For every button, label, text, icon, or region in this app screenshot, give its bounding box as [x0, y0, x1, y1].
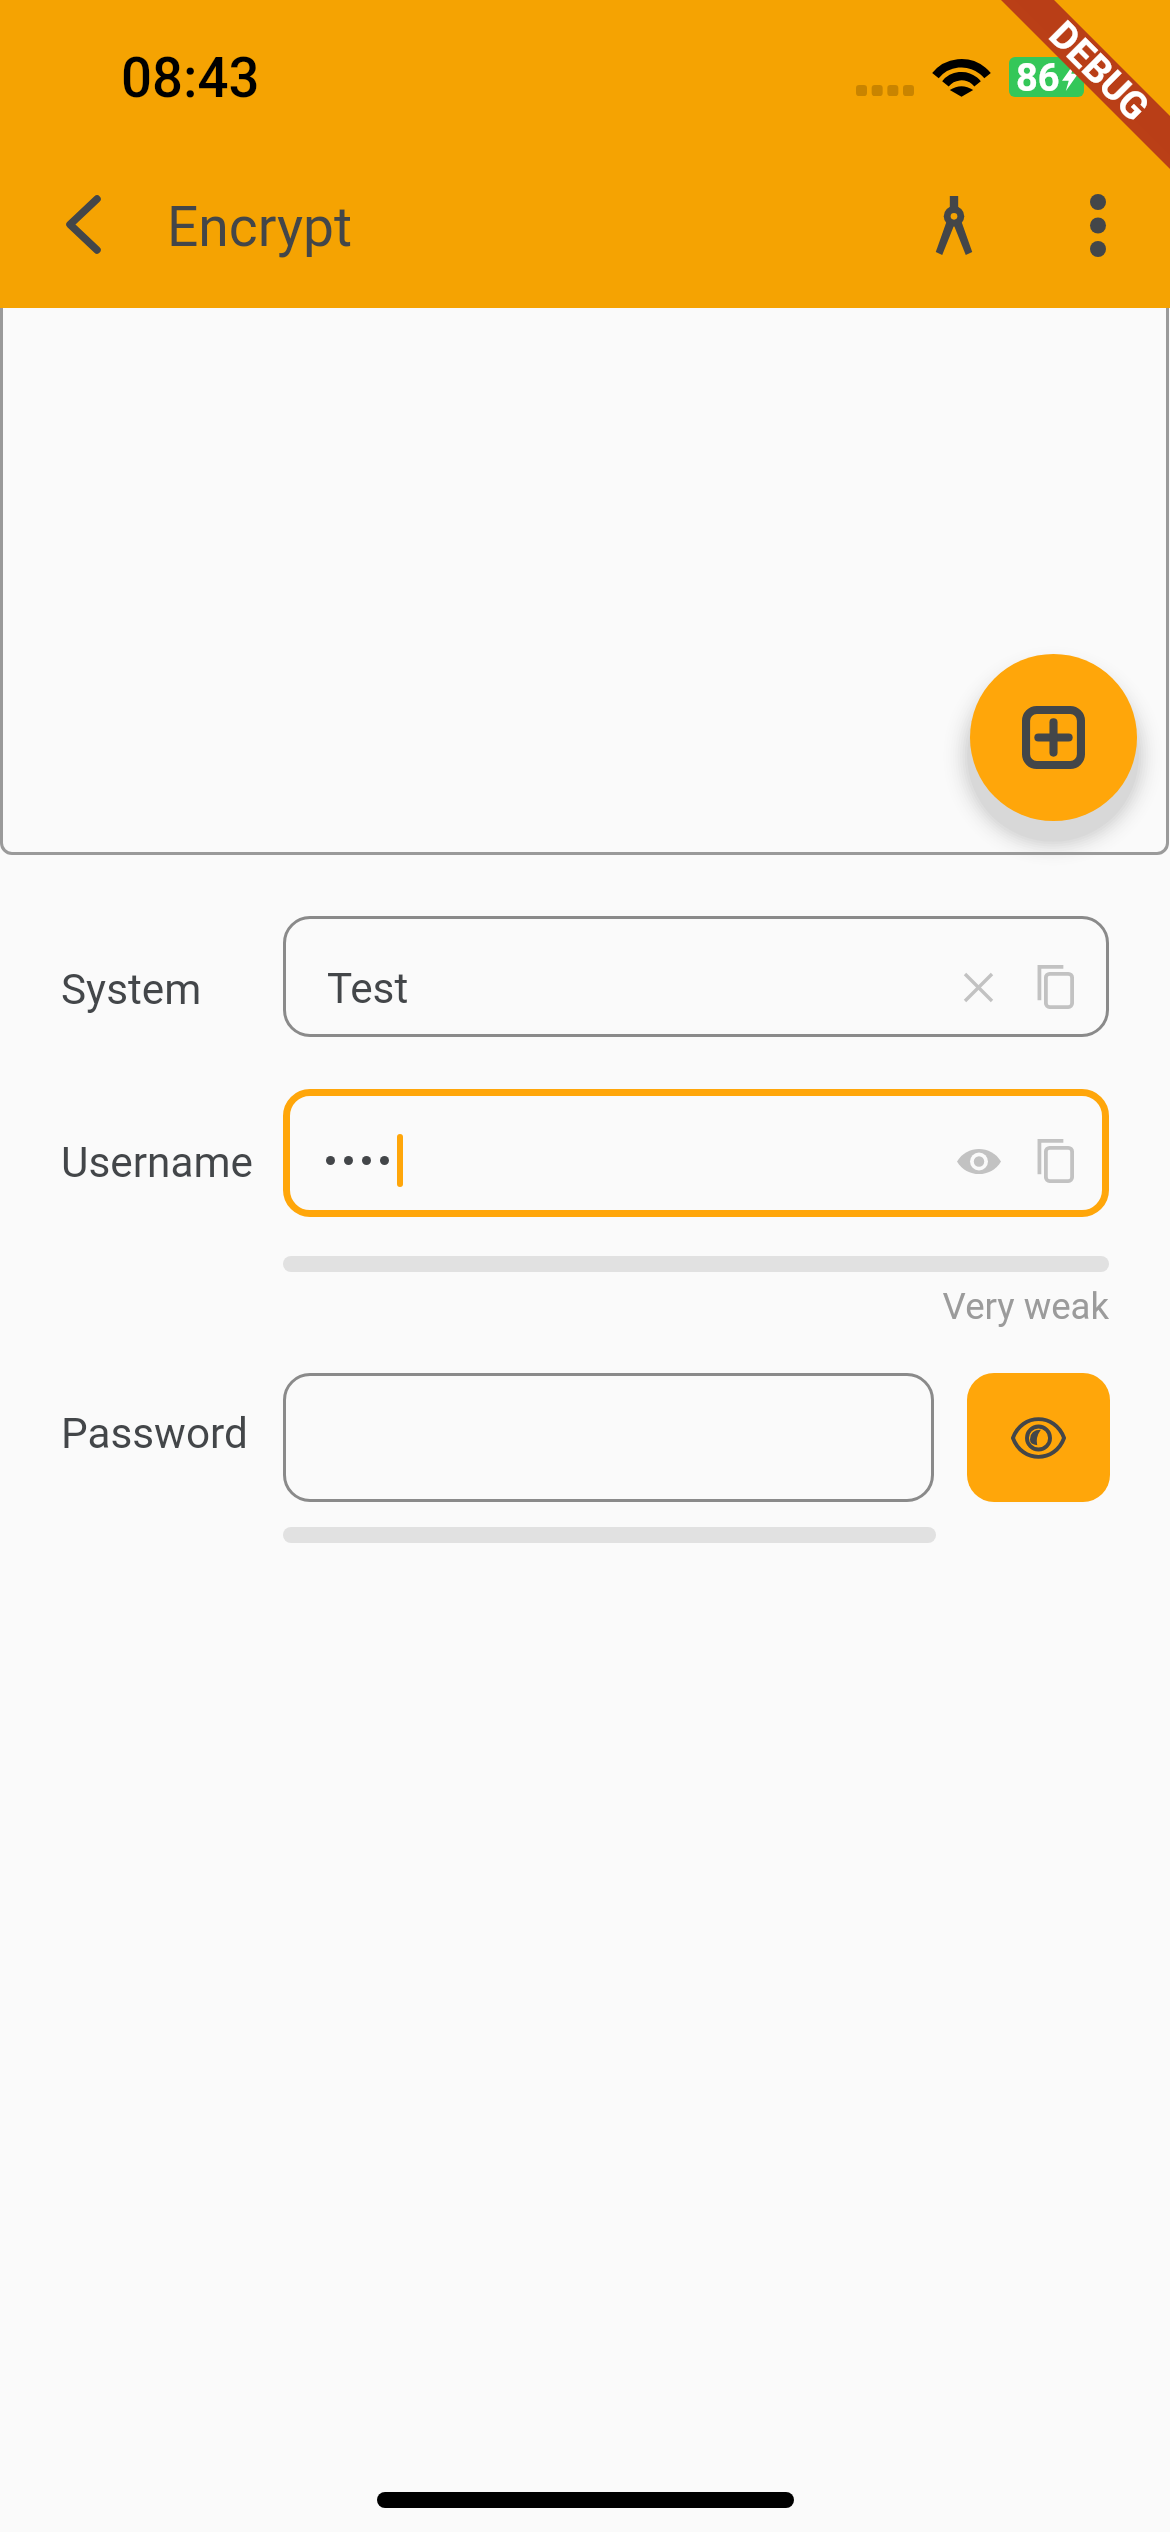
staticText: Test — [327, 964, 409, 1014]
staticText: Very weak — [0, 1285, 1109, 1328]
staticText: 86 — [1016, 57, 1060, 96]
button[interactable] — [283, 1373, 934, 1502]
button[interactable]: Copy — [1010, 942, 1100, 1032]
button[interactable]: Toggle password visibility — [967, 1373, 1110, 1502]
staticText: System — [61, 965, 283, 1015]
staticText: Encrypt — [167, 195, 353, 260]
button[interactable]: Show value — [283, 1089, 1109, 1217]
button[interactable]: Copy — [1010, 1116, 1100, 1206]
button[interactable]: Test — [283, 916, 1109, 1037]
staticText: Username — [61, 1138, 283, 1188]
button[interactable]: More options — [1032, 159, 1164, 291]
staticText: DEBUG — [1040, 12, 1158, 131]
button[interactable]: Back — [17, 158, 149, 290]
button[interactable]: Clear — [933, 942, 1023, 1032]
button[interactable]: Add — [970, 654, 1137, 821]
staticText: Password — [61, 1409, 283, 1459]
button[interactable]: Architecture — [888, 159, 1020, 291]
staticText: 08:43 — [121, 46, 260, 110]
button[interactable]: Show value — [934, 1116, 1024, 1206]
